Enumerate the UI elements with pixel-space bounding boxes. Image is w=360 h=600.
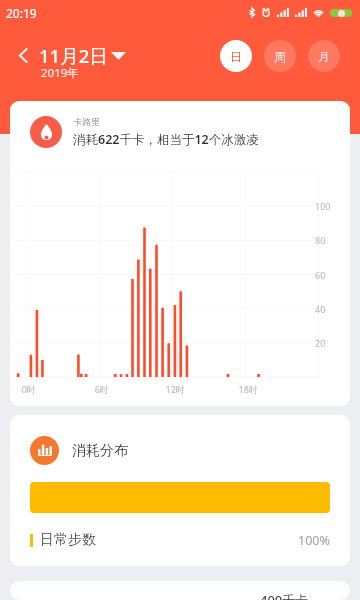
staticText: 消耗分布 [72,442,128,460]
staticText: 2019年 [41,65,79,81]
button[interactable]: 周 [264,40,296,72]
staticText: 日 [230,49,242,64]
button[interactable]: Back [14,43,32,67]
staticText: 卡路里 [73,116,100,127]
staticText: 日常步数 [40,531,96,549]
staticText: 20:19 [6,5,37,21]
button[interactable]: 月 [308,40,340,72]
staticText: 100% [298,532,330,549]
button[interactable]: 日 [220,40,252,72]
button[interactable]: 11月2日 [39,43,126,68]
staticText: 消耗622千卡，相当于12个冰激凌 [73,131,259,148]
staticText: 周 [274,49,286,64]
staticText: 11月2日 [39,43,108,68]
staticText: 400千卡 [260,591,309,600]
button[interactable]: 400千卡 [10,581,350,600]
staticText: 月 [318,49,330,64]
